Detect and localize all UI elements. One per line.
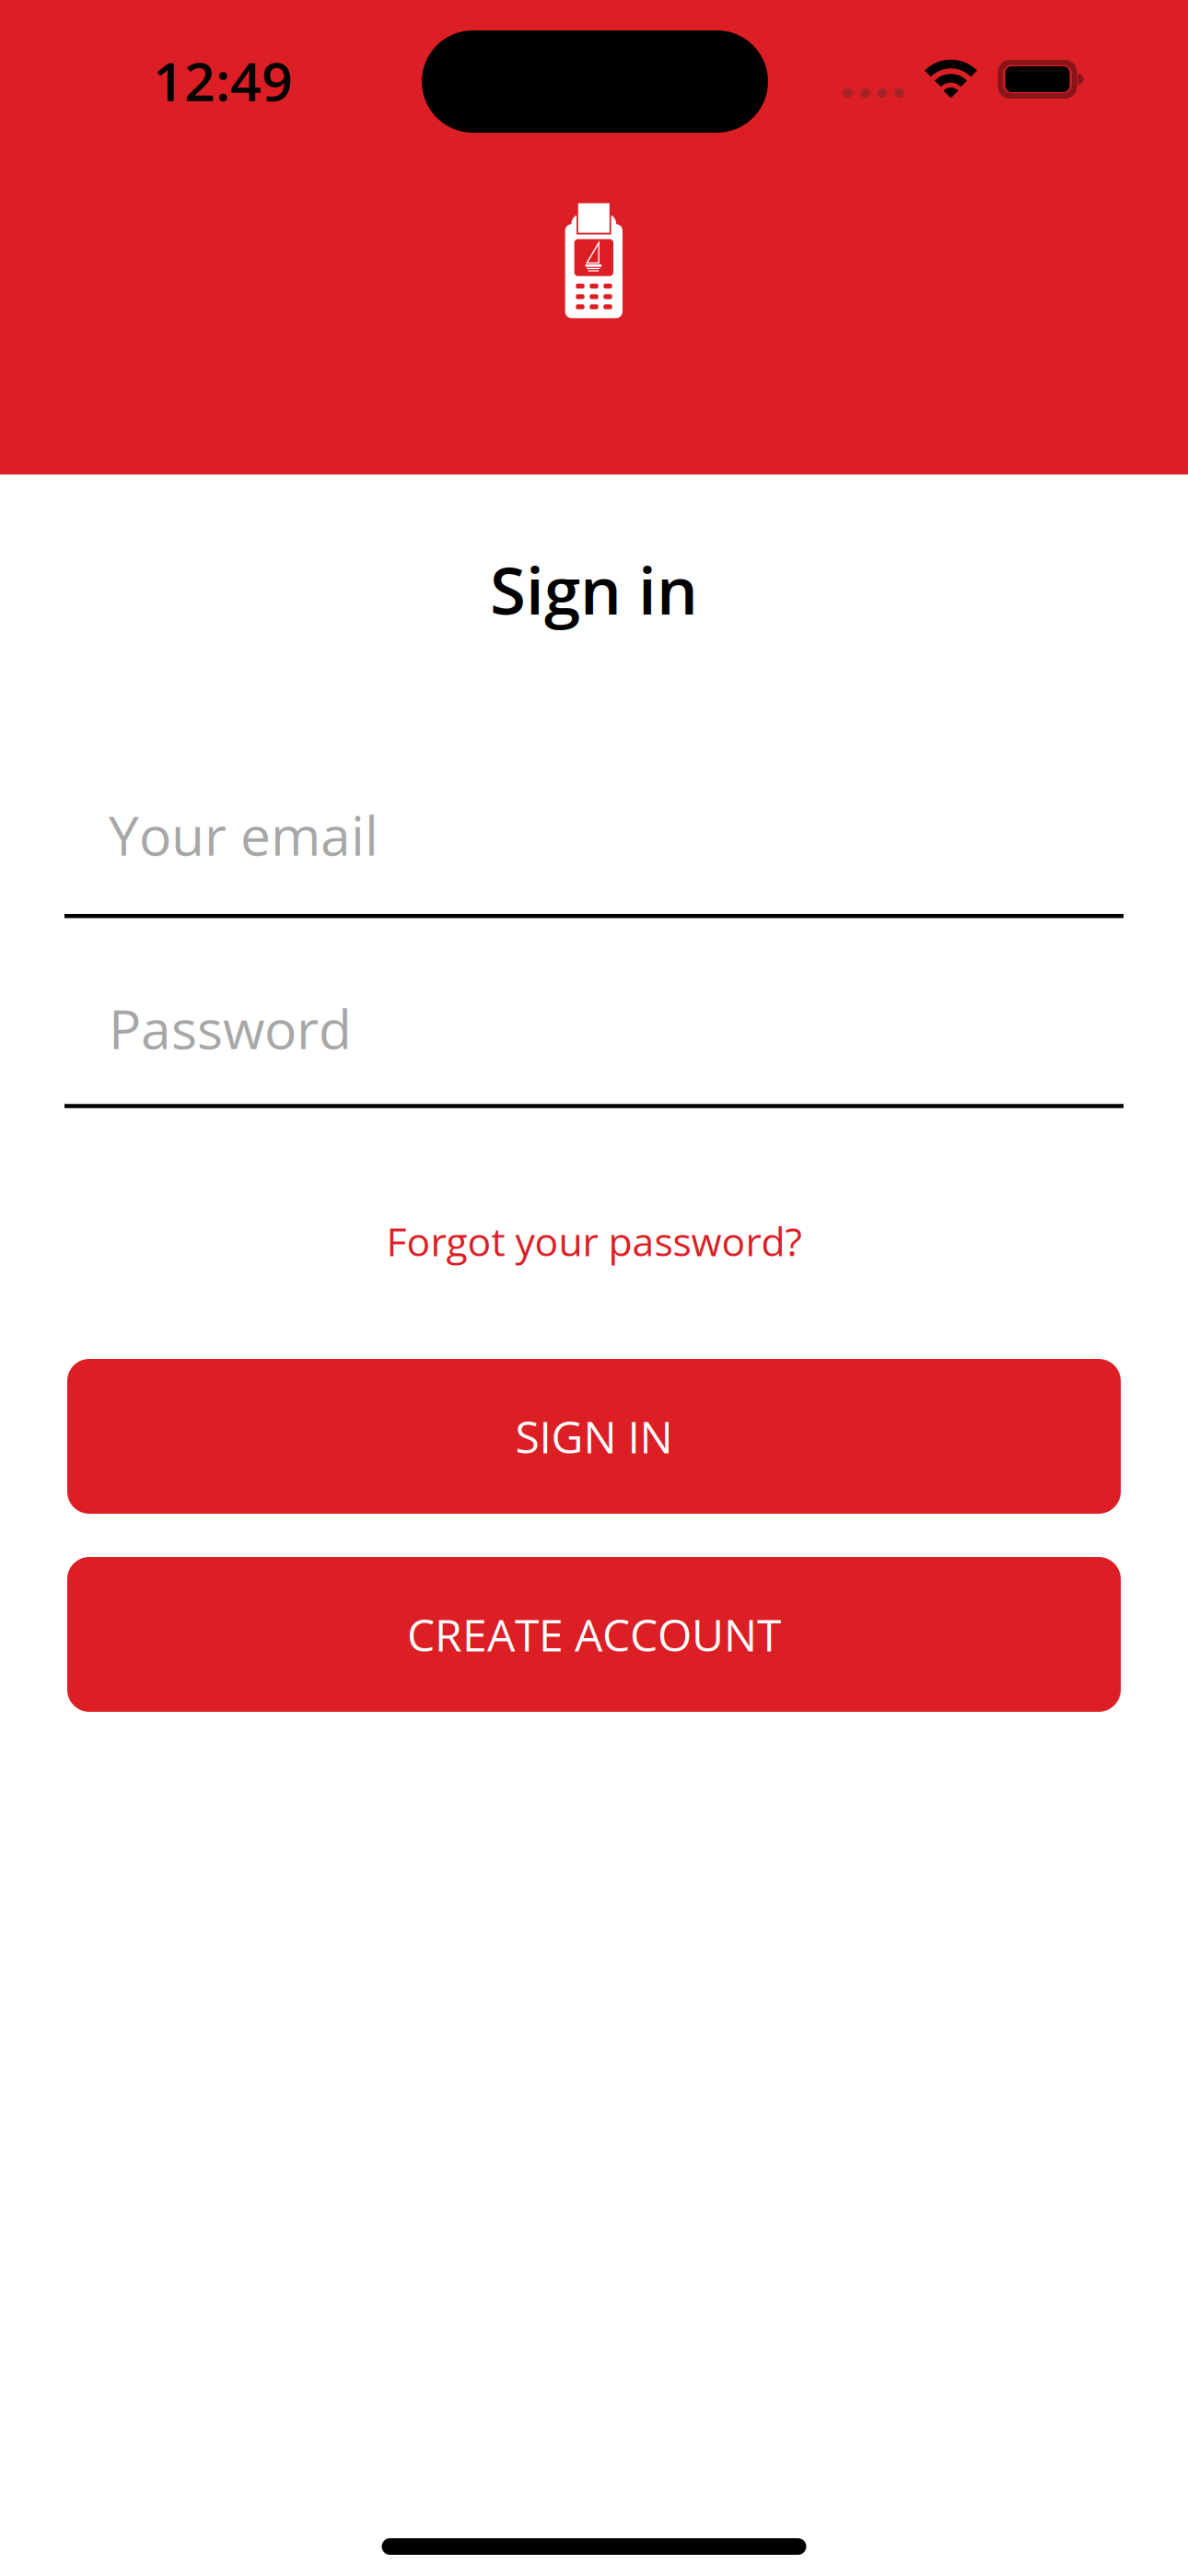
staticText: Forgot your password? (386, 1214, 802, 1268)
staticText: Password (109, 991, 352, 1065)
button[interactable]: CREATE ACCOUNT (67, 1557, 1121, 1712)
button[interactable]: Password (64, 952, 1124, 1108)
staticText: 12:49 (153, 43, 293, 117)
staticText: CREATE ACCOUNT (407, 1604, 781, 1665)
staticText: Your email (109, 798, 379, 872)
button[interactable]: Your email (64, 755, 1124, 918)
staticText: Sign in (490, 545, 698, 633)
button[interactable]: SIGN IN (67, 1359, 1121, 1514)
button[interactable]: Forgot your password? (368, 1196, 820, 1286)
staticText: SIGN IN (515, 1406, 673, 1466)
